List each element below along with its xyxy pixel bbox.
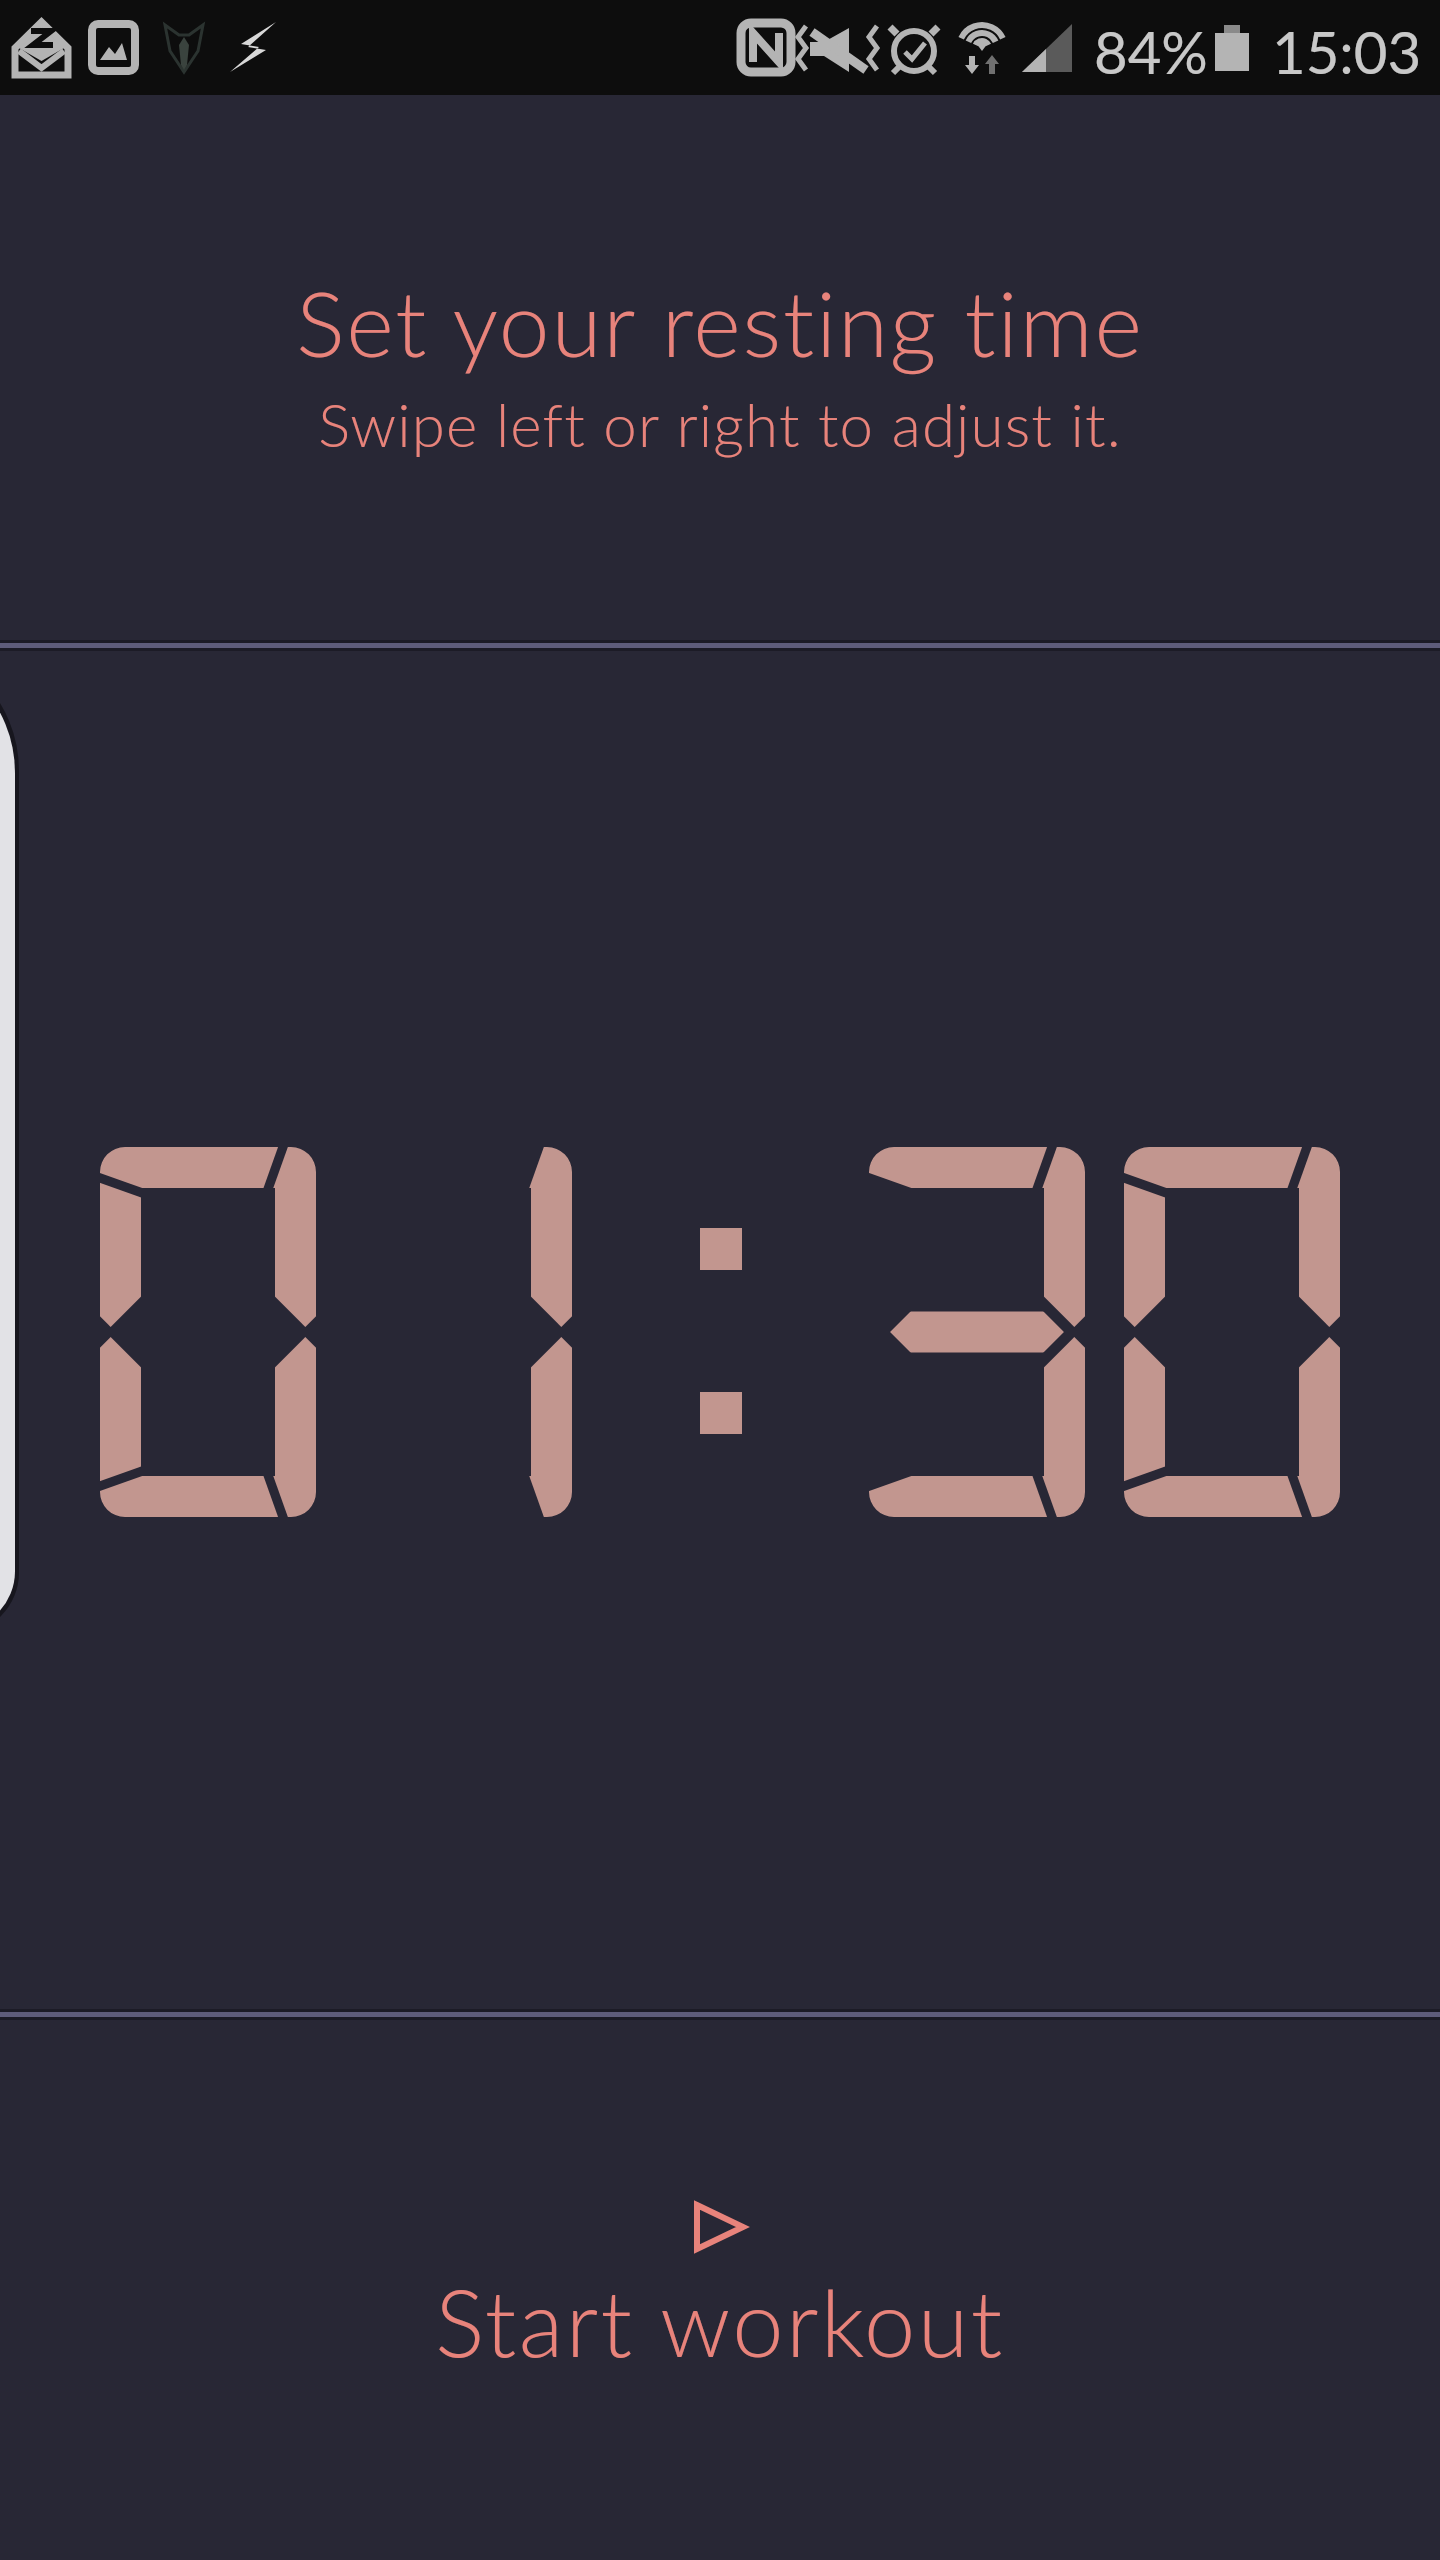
staticText: Set your resting time	[296, 267, 1144, 376]
button[interactable]: Start workout	[0, 2203, 1440, 2376]
button[interactable]: Resting time 01:30, swipe to adjust	[0, 648, 1440, 2009]
staticText: Swipe left or right to adjust it.	[318, 388, 1122, 460]
staticText: 84%	[1094, 17, 1208, 87]
other: Start workout	[693, 2203, 747, 2266]
staticText: Start workout	[435, 2266, 1005, 2376]
staticText: 15:03	[1272, 17, 1422, 87]
